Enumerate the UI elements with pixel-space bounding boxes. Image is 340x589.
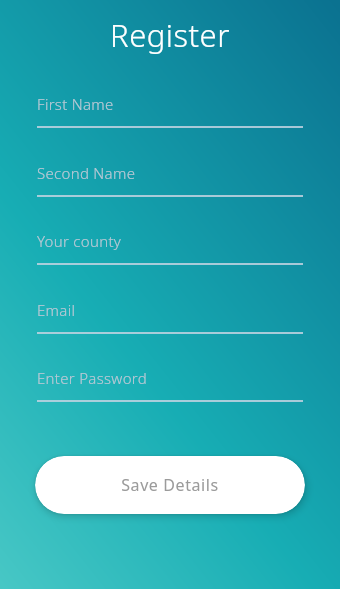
staticText: Register (0, 14, 340, 56)
staticText: Enter Password (37, 368, 147, 388)
staticText: Email (37, 300, 76, 320)
staticText: Second Name (37, 163, 136, 183)
button[interactable]: Email (37, 298, 303, 334)
staticText: First Name (37, 94, 114, 114)
staticText: Your county (37, 231, 122, 251)
button[interactable]: Save Details (35, 456, 305, 514)
button[interactable]: Enter Password (37, 366, 303, 402)
button[interactable]: First Name (37, 92, 303, 128)
staticText: Save Details (121, 474, 219, 496)
button[interactable]: Second Name (37, 161, 303, 197)
button[interactable]: Your county (37, 229, 303, 265)
